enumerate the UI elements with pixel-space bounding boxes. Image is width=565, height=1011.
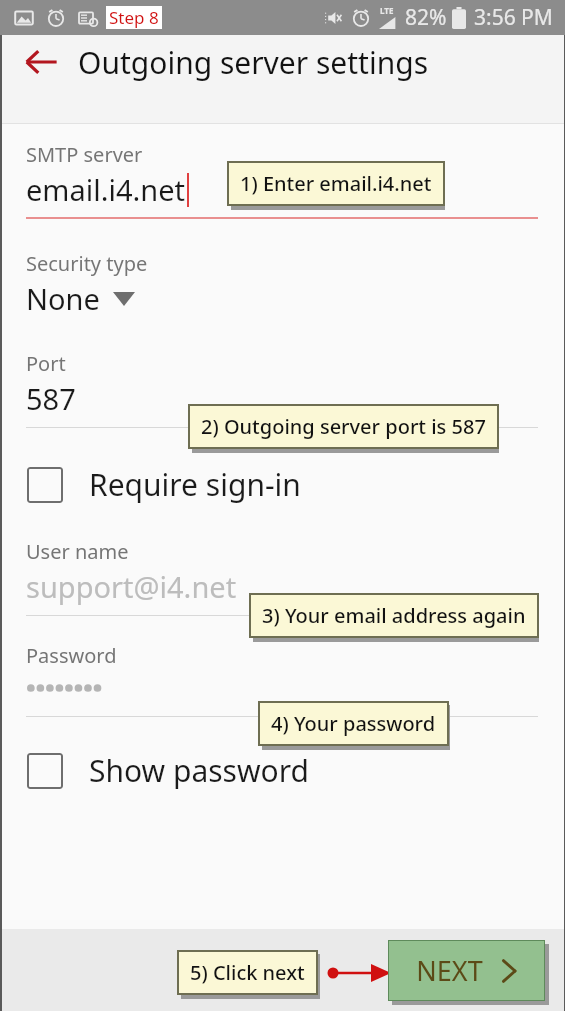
button[interactable] xyxy=(0,680,565,696)
staticText: Port xyxy=(26,350,66,377)
staticText: 1) Enter email.i4.net xyxy=(240,170,432,197)
staticText: 3:56 PM xyxy=(474,3,553,32)
staticText: Step 8 xyxy=(109,6,159,29)
staticText: 2) Outgoing server port is 587 xyxy=(201,413,486,440)
staticText: Show password xyxy=(89,750,309,791)
staticText: 82% xyxy=(405,3,447,32)
button[interactable]: NEXT xyxy=(388,940,545,1001)
button[interactable]: None xyxy=(0,279,565,318)
staticText: 1) Enter email.i4.net xyxy=(244,174,432,201)
staticText: 587 xyxy=(26,379,76,418)
staticText: Password xyxy=(26,642,117,669)
staticText: Security type xyxy=(26,250,148,277)
staticText: SMTP server xyxy=(26,141,143,168)
button[interactable]: 587 xyxy=(0,379,565,418)
button[interactable]: support@i4.net xyxy=(0,567,565,606)
staticText: 4) Your password xyxy=(275,714,437,741)
staticText: 2) Outgoing server port is 587 xyxy=(205,417,486,444)
staticText: User name xyxy=(26,538,129,565)
staticText: email.i4.net xyxy=(26,170,186,209)
staticText: NEXT xyxy=(416,952,483,989)
staticText: LTE xyxy=(380,5,394,16)
staticText: None xyxy=(26,279,100,318)
button[interactable]: email.i4.net xyxy=(0,170,565,209)
staticText: 3) Your email address again xyxy=(266,606,526,633)
staticText: 4) Your password xyxy=(271,710,436,737)
button[interactable]: Back xyxy=(14,35,68,89)
staticText: Outgoing server settings xyxy=(78,42,429,83)
staticText: Require sign-in xyxy=(89,464,301,505)
staticText: 3) Your email address again xyxy=(262,602,526,629)
button[interactable]: Require sign-in xyxy=(0,460,565,509)
staticText: 5) Click next xyxy=(190,959,305,986)
button[interactable]: Show password xyxy=(0,746,565,795)
staticText: 5) Click next xyxy=(194,963,307,990)
staticText: support@i4.net xyxy=(26,567,237,606)
